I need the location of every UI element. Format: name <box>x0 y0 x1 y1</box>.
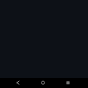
button[interactable]: Home <box>37 78 49 88</box>
button[interactable]: Back <box>12 78 24 88</box>
button[interactable]: Recent apps <box>62 78 74 88</box>
